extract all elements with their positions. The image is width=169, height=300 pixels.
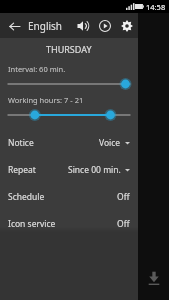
button[interactable]: Notice bbox=[0, 129, 138, 156]
staticText: Repeat bbox=[8, 164, 36, 176]
staticText: Icon service bbox=[8, 218, 56, 230]
button[interactable]: Volume bbox=[72, 15, 94, 37]
staticText: Interval: 60 min. bbox=[8, 64, 66, 74]
button[interactable]: Icon service bbox=[0, 210, 138, 237]
button[interactable]: Back bbox=[4, 16, 24, 36]
button[interactable]: Download bbox=[144, 268, 164, 288]
staticText: Since 00 min. bbox=[68, 164, 121, 176]
staticText: Working hours: 7 - 21 bbox=[8, 95, 84, 105]
staticText: English bbox=[28, 19, 63, 33]
staticText: Notice bbox=[8, 137, 34, 149]
button[interactable]: Schedule bbox=[0, 183, 138, 210]
button[interactable]: Working hours: 7 - 21 bbox=[8, 95, 130, 120]
staticText: Voice bbox=[99, 137, 121, 149]
staticText: 14:58 bbox=[146, 2, 166, 12]
staticText: Off bbox=[117, 218, 130, 230]
button[interactable]: Settings bbox=[116, 15, 138, 37]
staticText: THURSDAY bbox=[46, 43, 92, 55]
staticText: Schedule bbox=[8, 191, 45, 203]
button[interactable]: Interval: 60 min. bbox=[8, 64, 130, 89]
button[interactable]: Play bbox=[94, 15, 116, 37]
staticText: Off bbox=[117, 191, 130, 203]
button[interactable]: Repeat bbox=[0, 156, 138, 183]
